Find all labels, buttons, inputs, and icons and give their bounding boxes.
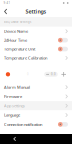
staticText: App settings bbox=[4, 103, 25, 108]
button[interactable]: Connection notification bbox=[0, 120, 72, 129]
staticText: 9:41 bbox=[3, 1, 10, 5]
button[interactable]: 24Hour Time bbox=[0, 36, 72, 45]
button[interactable]: 0 bbox=[0, 62, 72, 82]
staticText: 0.0 bbox=[51, 72, 56, 76]
staticText: Temperature Calibration bbox=[4, 55, 47, 61]
staticText: Alarm Manual bbox=[4, 84, 30, 90]
staticText: 24Hour Time bbox=[4, 37, 27, 43]
staticText: Connection notification bbox=[4, 122, 42, 127]
button[interactable]: Temperature Unit bbox=[0, 45, 72, 53]
button[interactable]: Device Name bbox=[0, 27, 72, 36]
staticText: Temperature Unit bbox=[4, 46, 35, 52]
button[interactable]: Toggle bbox=[58, 47, 68, 51]
button[interactable]: Temperature Calibration bbox=[0, 53, 72, 62]
button[interactable]: Toggle bbox=[58, 122, 68, 127]
button[interactable]: Language bbox=[0, 110, 72, 120]
button[interactable]: Toggle bbox=[58, 38, 68, 42]
staticText: Firmware bbox=[4, 94, 22, 99]
staticText: Language bbox=[4, 112, 20, 118]
button[interactable]: Firmware bbox=[0, 92, 72, 101]
staticText: Settings bbox=[25, 8, 46, 15]
button[interactable]: App settings bbox=[0, 101, 72, 110]
staticText: 0 bbox=[27, 72, 29, 76]
staticText: Device Name bbox=[4, 29, 28, 34]
button[interactable]: Alarm Manual bbox=[0, 82, 72, 92]
staticText: BBQ Device settings bbox=[4, 20, 31, 24]
button[interactable]: Back bbox=[0, 6, 11, 17]
button[interactable]: Back bbox=[13, 136, 17, 141]
